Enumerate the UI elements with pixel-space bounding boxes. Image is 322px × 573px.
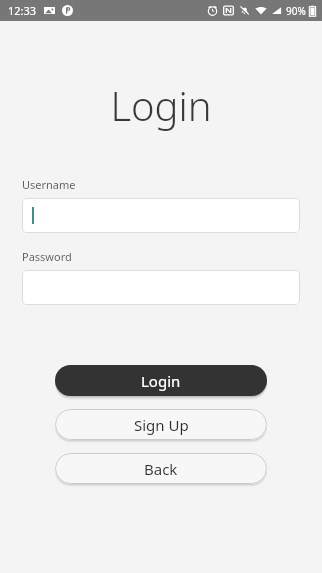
staticText: Login [141,371,181,391]
button[interactable]: Username input [22,198,300,233]
staticText: Password [22,249,72,264]
button[interactable]: Login [55,365,267,396]
staticText: Login [0,78,322,132]
button[interactable]: Sign Up [55,409,267,440]
staticText: Back [144,459,178,479]
button[interactable]: Back [55,453,267,484]
staticText: 90% [286,4,306,18]
staticText: Username [22,177,76,192]
staticText: Sign Up [134,415,189,435]
staticText: 12:33 [8,3,37,18]
button[interactable]: Password input [22,270,300,305]
